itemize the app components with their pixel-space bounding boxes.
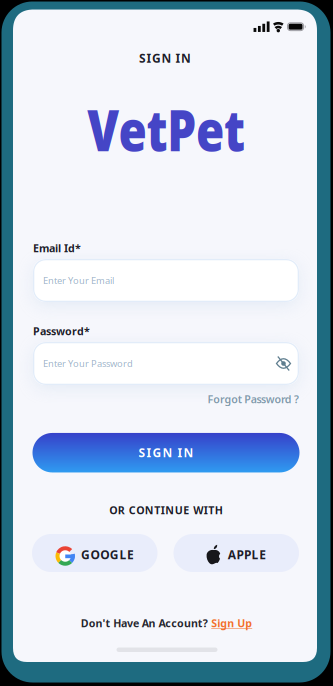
button[interactable]: Sign Up	[211, 616, 252, 630]
staticText: Don't Have An Account?	[81, 616, 208, 630]
button[interactable]: GOOGLE	[32, 534, 157, 572]
staticText: GOOGLE	[81, 546, 134, 562]
staticText: Sign Up	[211, 616, 252, 630]
button[interactable]: SIGN IN	[32, 433, 299, 472]
staticText: APPLE	[228, 546, 266, 562]
staticText: VetPet	[67, 91, 264, 167]
button[interactable]: Forgot Password ?	[208, 392, 299, 406]
staticText: Email Id*	[33, 241, 81, 255]
button[interactable]: Password	[33, 342, 299, 385]
button[interactable]: Email Id	[33, 259, 299, 302]
button[interactable]: Show password	[275, 356, 292, 371]
button[interactable]: APPLE	[173, 534, 299, 572]
staticText: SIGN IN	[138, 445, 193, 461]
staticText: Enter Your Email	[43, 274, 114, 287]
staticText: Password*	[33, 324, 90, 338]
staticText: Forgot Password ?	[208, 392, 299, 406]
staticText: SIGN IN	[139, 50, 191, 66]
staticText: Enter Your Password	[43, 357, 133, 370]
staticText: OR CONTINUE WITH	[109, 503, 223, 517]
